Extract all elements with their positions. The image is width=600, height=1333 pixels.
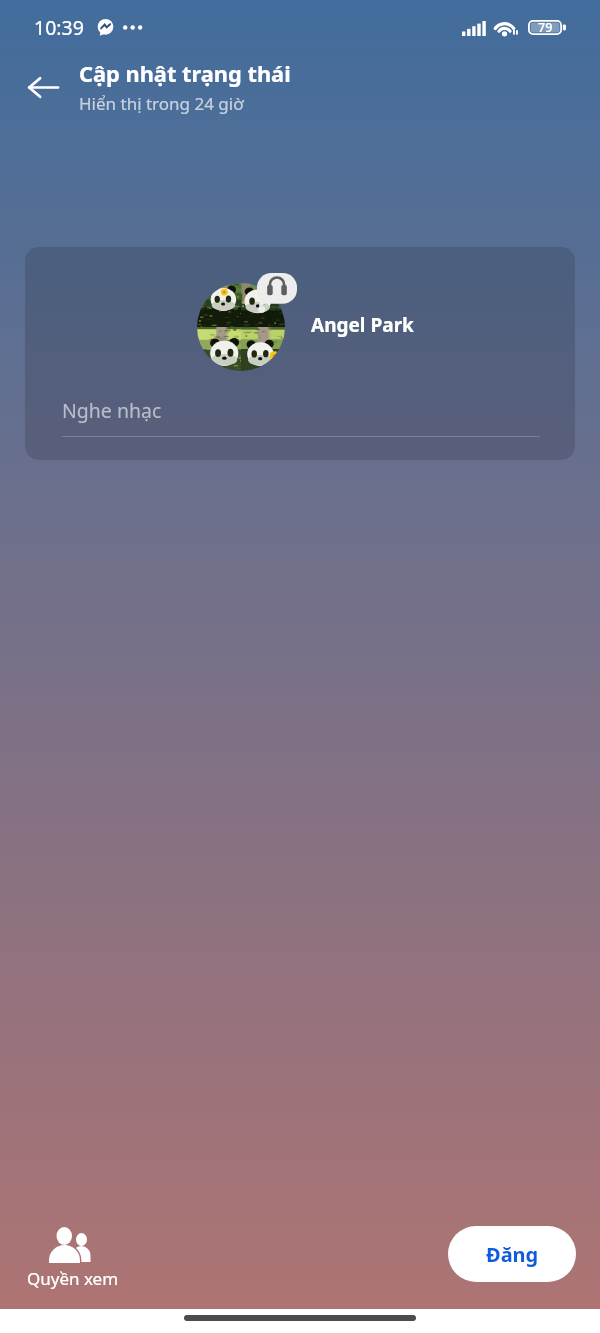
staticText: Hiển thị trong 24 giờ xyxy=(79,92,244,115)
button[interactable]: Đăng xyxy=(448,1226,576,1282)
button[interactable]: Back xyxy=(17,61,69,113)
staticText: Cập nhật trạng thái xyxy=(79,59,291,89)
staticText: Quyền xem xyxy=(27,1267,119,1290)
button[interactable]: Quyền xem xyxy=(20,1218,120,1296)
staticText: Nghe nhạc xyxy=(62,397,162,424)
staticText: 10:39 xyxy=(34,14,84,41)
staticText: Đăng xyxy=(486,1241,539,1268)
staticText: Angel Park xyxy=(311,312,414,338)
staticText: 79 xyxy=(538,19,553,36)
button[interactable]: Nghe nhạc xyxy=(55,385,547,440)
button[interactable]: Angel Park xyxy=(185,275,475,380)
